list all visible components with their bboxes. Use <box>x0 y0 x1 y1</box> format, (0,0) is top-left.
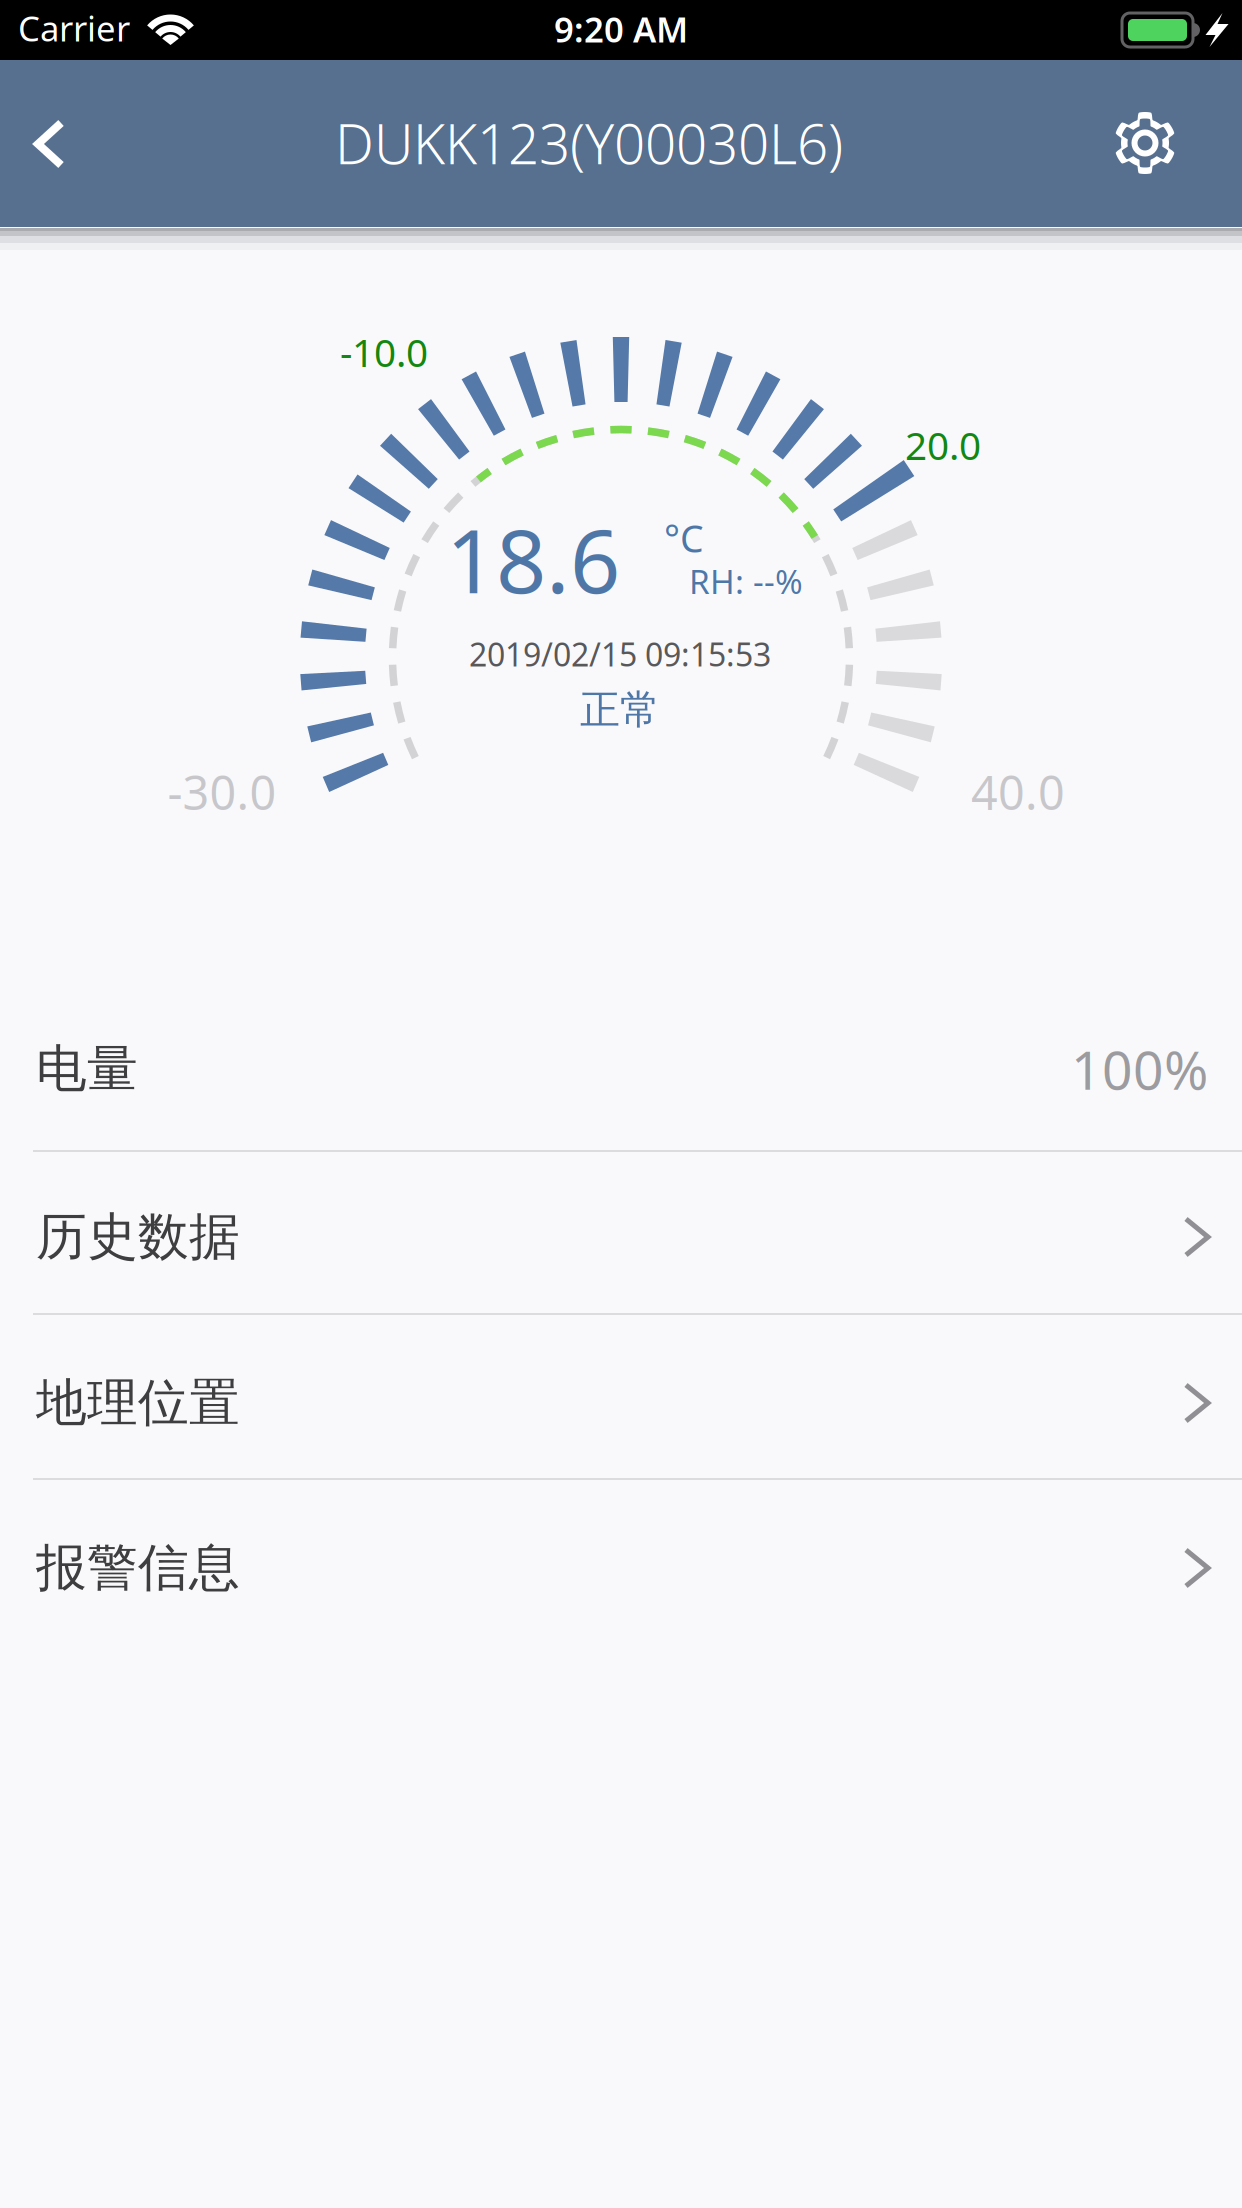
staticText: -30.0 <box>167 761 276 823</box>
button[interactable]: 报警信息 <box>0 1486 1242 1650</box>
button[interactable]: 地理位置 <box>0 1321 1242 1485</box>
staticText: 2019/02/15 09:15:53 <box>469 633 771 675</box>
staticText: 40.0 <box>971 761 1065 823</box>
staticText: DUKK123(Y00030L6) <box>335 107 843 179</box>
staticText: 历史数据 <box>36 1206 240 1268</box>
staticText: 地理位置 <box>36 1372 240 1434</box>
staticText: 18.6 <box>446 501 620 617</box>
staticText: 正常 <box>580 685 660 734</box>
staticText: Carrier <box>18 5 130 51</box>
staticText: -10.0 <box>340 326 428 378</box>
staticText: 9:20 AM <box>554 6 688 52</box>
staticText: 电量 <box>36 1038 138 1100</box>
staticText: 报警信息 <box>36 1537 240 1599</box>
staticText: °C <box>664 513 704 563</box>
button[interactable]: Back <box>0 89 99 199</box>
button[interactable]: Settings <box>1095 88 1195 198</box>
staticText: 100% <box>1071 1034 1208 1104</box>
staticText: 20.0 <box>905 419 981 471</box>
button[interactable]: 历史数据 <box>0 1155 1242 1319</box>
staticText: RH: --% <box>689 559 803 603</box>
